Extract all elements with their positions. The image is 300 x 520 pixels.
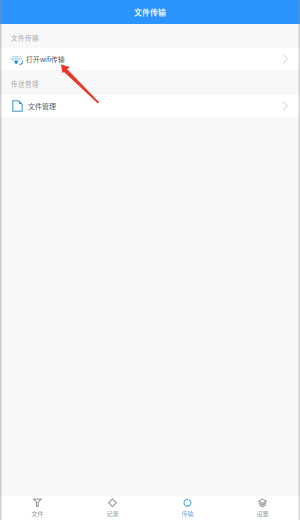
staticText: 文件管理: [28, 101, 56, 111]
staticText: 文件传输: [11, 33, 39, 42]
button[interactable]: 打开wifi传输: [0, 48, 300, 70]
staticText: 打开wifi传输: [26, 54, 65, 64]
staticText: 文件传输: [134, 6, 166, 18]
button[interactable]: 文件传输: [0, 0, 300, 24]
button[interactable]: 文件管理: [0, 95, 300, 117]
button[interactable]: 记录: [75, 496, 150, 520]
staticText: 记录: [106, 509, 118, 518]
staticText: 传输: [181, 509, 193, 518]
button[interactable]: 设置: [225, 496, 300, 520]
staticText: 设置: [256, 509, 268, 518]
button[interactable]: 文件: [0, 496, 75, 520]
staticText: 传送管理: [11, 79, 39, 88]
button[interactable]: 传输: [150, 496, 225, 520]
staticText: 文件: [31, 509, 43, 518]
